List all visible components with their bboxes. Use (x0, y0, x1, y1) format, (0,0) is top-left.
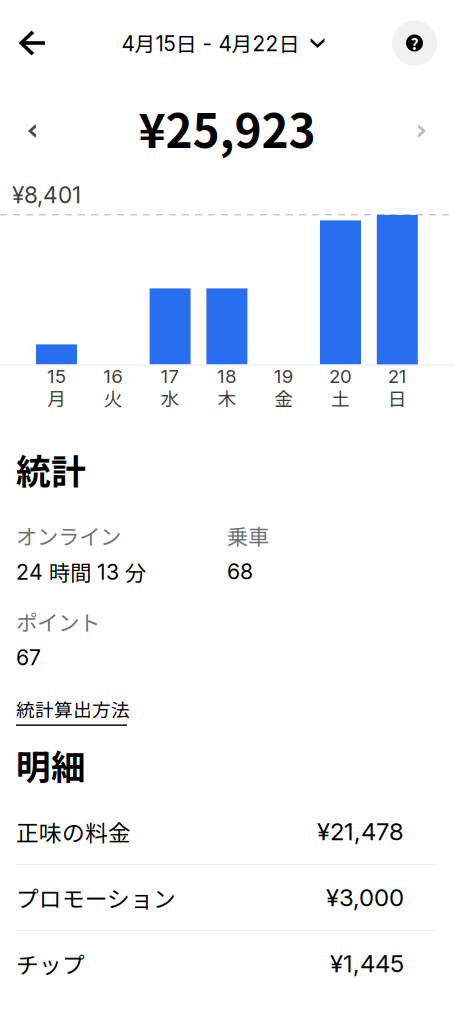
staticText: 4月15日 - 4月22日 (121, 28, 299, 58)
staticText: 水 (161, 384, 180, 411)
staticText: チップ (16, 947, 85, 980)
button[interactable]: Next week (390, 100, 454, 162)
staticText: ¥3,000 (326, 883, 404, 912)
staticText: ¥21,478 (317, 817, 404, 846)
staticText: 正味の料金 (16, 815, 131, 848)
staticText: 16 (103, 365, 123, 387)
staticText: 火 (104, 384, 123, 411)
staticText: 統計算出方法 (16, 695, 130, 722)
staticText: 67 (16, 644, 41, 670)
button[interactable]: Back (0, 0, 64, 86)
staticText: 土 (331, 384, 350, 411)
staticText: 乗車 (227, 520, 269, 551)
button[interactable]: Previous week (0, 100, 64, 162)
staticText: 明細 (16, 740, 86, 790)
button[interactable]: 統計算出方法 (16, 687, 130, 734)
staticText: 統計 (16, 444, 86, 494)
button[interactable]: チップ (0, 931, 454, 996)
staticText: 15 (47, 365, 66, 387)
staticText: 68 (227, 558, 253, 584)
button[interactable]: 正味の料金 (0, 799, 454, 864)
staticText: 24 時間 13 分 (16, 556, 146, 587)
button[interactable]: Help (375, 0, 454, 86)
staticText: 月 (47, 384, 66, 411)
staticText: 18 (217, 365, 237, 387)
staticText: 19 (274, 365, 294, 387)
staticText: ¥8,401 (12, 181, 81, 209)
staticText: 金 (274, 384, 293, 411)
staticText: 木 (217, 384, 236, 411)
staticText: ¥1,445 (330, 949, 404, 978)
staticText: 17 (161, 365, 180, 387)
staticText: ポイント (16, 606, 100, 637)
staticText: オンライン (16, 520, 121, 551)
staticText: ¥25,923 (138, 95, 315, 161)
staticText: 20 (329, 365, 352, 387)
button[interactable]: 4月15日 - 4月22日 (121, 16, 332, 70)
staticText: プロモーション (16, 881, 176, 914)
staticText: 日 (388, 384, 407, 411)
staticText: ? (410, 31, 418, 55)
button[interactable]: プロモーション (0, 865, 454, 930)
staticText: 21 (388, 365, 407, 387)
